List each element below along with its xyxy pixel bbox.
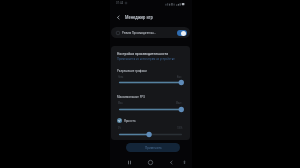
staticText: Яркость (124, 119, 136, 123)
staticText: Выс. (177, 76, 183, 79)
button[interactable]: Recents (124, 157, 134, 167)
button[interactable]: Home (145, 157, 155, 167)
button[interactable]: Slider (117, 132, 184, 137)
button[interactable] (111, 46, 190, 140)
button[interactable]: Back (166, 157, 176, 167)
button[interactable]: Яркость (116, 116, 137, 125)
button[interactable]: Применить (126, 143, 180, 152)
button[interactable]: Slider (117, 107, 184, 112)
staticText: Низк. (118, 76, 125, 79)
staticText: Режим Производительн… (122, 31, 156, 35)
staticText: Применяются ко всем играм на устройстве (117, 57, 175, 61)
staticText: Применить (145, 146, 162, 150)
staticText: 0% (118, 127, 121, 130)
button[interactable]: Performance mode toggle (177, 30, 187, 36)
staticText: Настройки производительности (117, 51, 169, 55)
staticText: Разрешение графики (117, 69, 147, 73)
staticText: Максимальные FPS (117, 95, 145, 99)
staticText: Менеджер игр (125, 15, 153, 20)
button[interactable]: Back (113, 12, 124, 23)
staticText: Мин. (118, 102, 124, 105)
staticText: 07:44 (116, 1, 124, 5)
staticText: 100% (177, 127, 183, 130)
staticText: Макс. (176, 102, 183, 105)
button[interactable]: Slider (117, 80, 184, 85)
button[interactable]: Voice assistant (179, 157, 189, 167)
button[interactable]: Режим Производительн… (111, 27, 190, 38)
